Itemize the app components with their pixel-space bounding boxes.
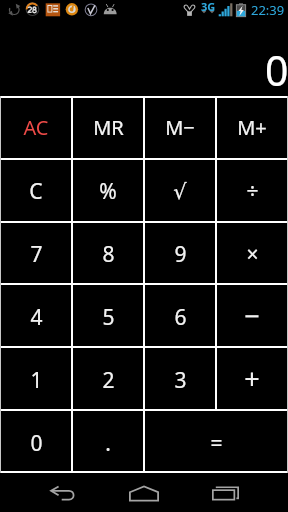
staticText: = xyxy=(210,429,223,458)
staticText: MR xyxy=(93,114,124,141)
staticText: 5 xyxy=(102,303,115,332)
staticText: 7 xyxy=(30,240,43,269)
staticText: . xyxy=(105,429,111,458)
button[interactable]: √ xyxy=(144,158,216,221)
button[interactable]: = xyxy=(144,410,288,473)
button[interactable]: Recent apps xyxy=(177,473,273,512)
staticText: AC xyxy=(23,114,49,141)
staticText: + xyxy=(244,360,260,397)
button[interactable]: Home xyxy=(96,473,192,512)
button[interactable]: 7 xyxy=(0,221,72,284)
button[interactable]: 9 xyxy=(144,221,216,284)
button[interactable]: C xyxy=(0,158,72,221)
button[interactable]: % xyxy=(72,158,144,221)
button[interactable]: MR xyxy=(72,96,144,158)
staticText: √ xyxy=(173,180,187,204)
staticText: 3G xyxy=(201,0,216,14)
staticText: 0 xyxy=(265,42,288,98)
staticText: 1 xyxy=(30,366,43,395)
button[interactable]: 1 xyxy=(0,347,72,410)
staticText: % xyxy=(99,177,117,206)
staticText: M− xyxy=(165,114,195,141)
button[interactable]: 5 xyxy=(72,284,144,347)
button[interactable]: AC xyxy=(0,96,72,158)
staticText: 22:39 xyxy=(251,1,285,19)
button[interactable]: 4 xyxy=(0,284,72,347)
staticText: 4 xyxy=(30,303,43,332)
staticText: C xyxy=(29,177,43,206)
button[interactable]: 0 xyxy=(0,410,72,473)
button[interactable]: 8 xyxy=(72,221,144,284)
staticText: 0 xyxy=(30,429,43,458)
staticText: 8 xyxy=(102,240,115,269)
button[interactable]: − xyxy=(216,284,288,347)
button[interactable]: 6 xyxy=(144,284,216,347)
button[interactable]: M+ xyxy=(216,96,288,158)
button[interactable]: 2 xyxy=(72,347,144,410)
staticText: 9 xyxy=(174,240,187,269)
button[interactable]: . xyxy=(72,410,144,473)
button[interactable]: ÷ xyxy=(216,158,288,221)
staticText: ÷ xyxy=(246,177,259,206)
staticText: 3 xyxy=(174,366,187,395)
staticText: 2 xyxy=(102,366,115,395)
button[interactable]: Back xyxy=(16,473,112,512)
button[interactable]: × xyxy=(216,221,288,284)
staticText: M+ xyxy=(237,114,267,141)
button[interactable]: 3 xyxy=(144,347,216,410)
staticText: − xyxy=(244,297,260,334)
button[interactable]: + xyxy=(216,347,288,410)
button[interactable]: M− xyxy=(144,96,216,158)
staticText: × xyxy=(246,240,259,269)
staticText: 6 xyxy=(174,303,187,332)
